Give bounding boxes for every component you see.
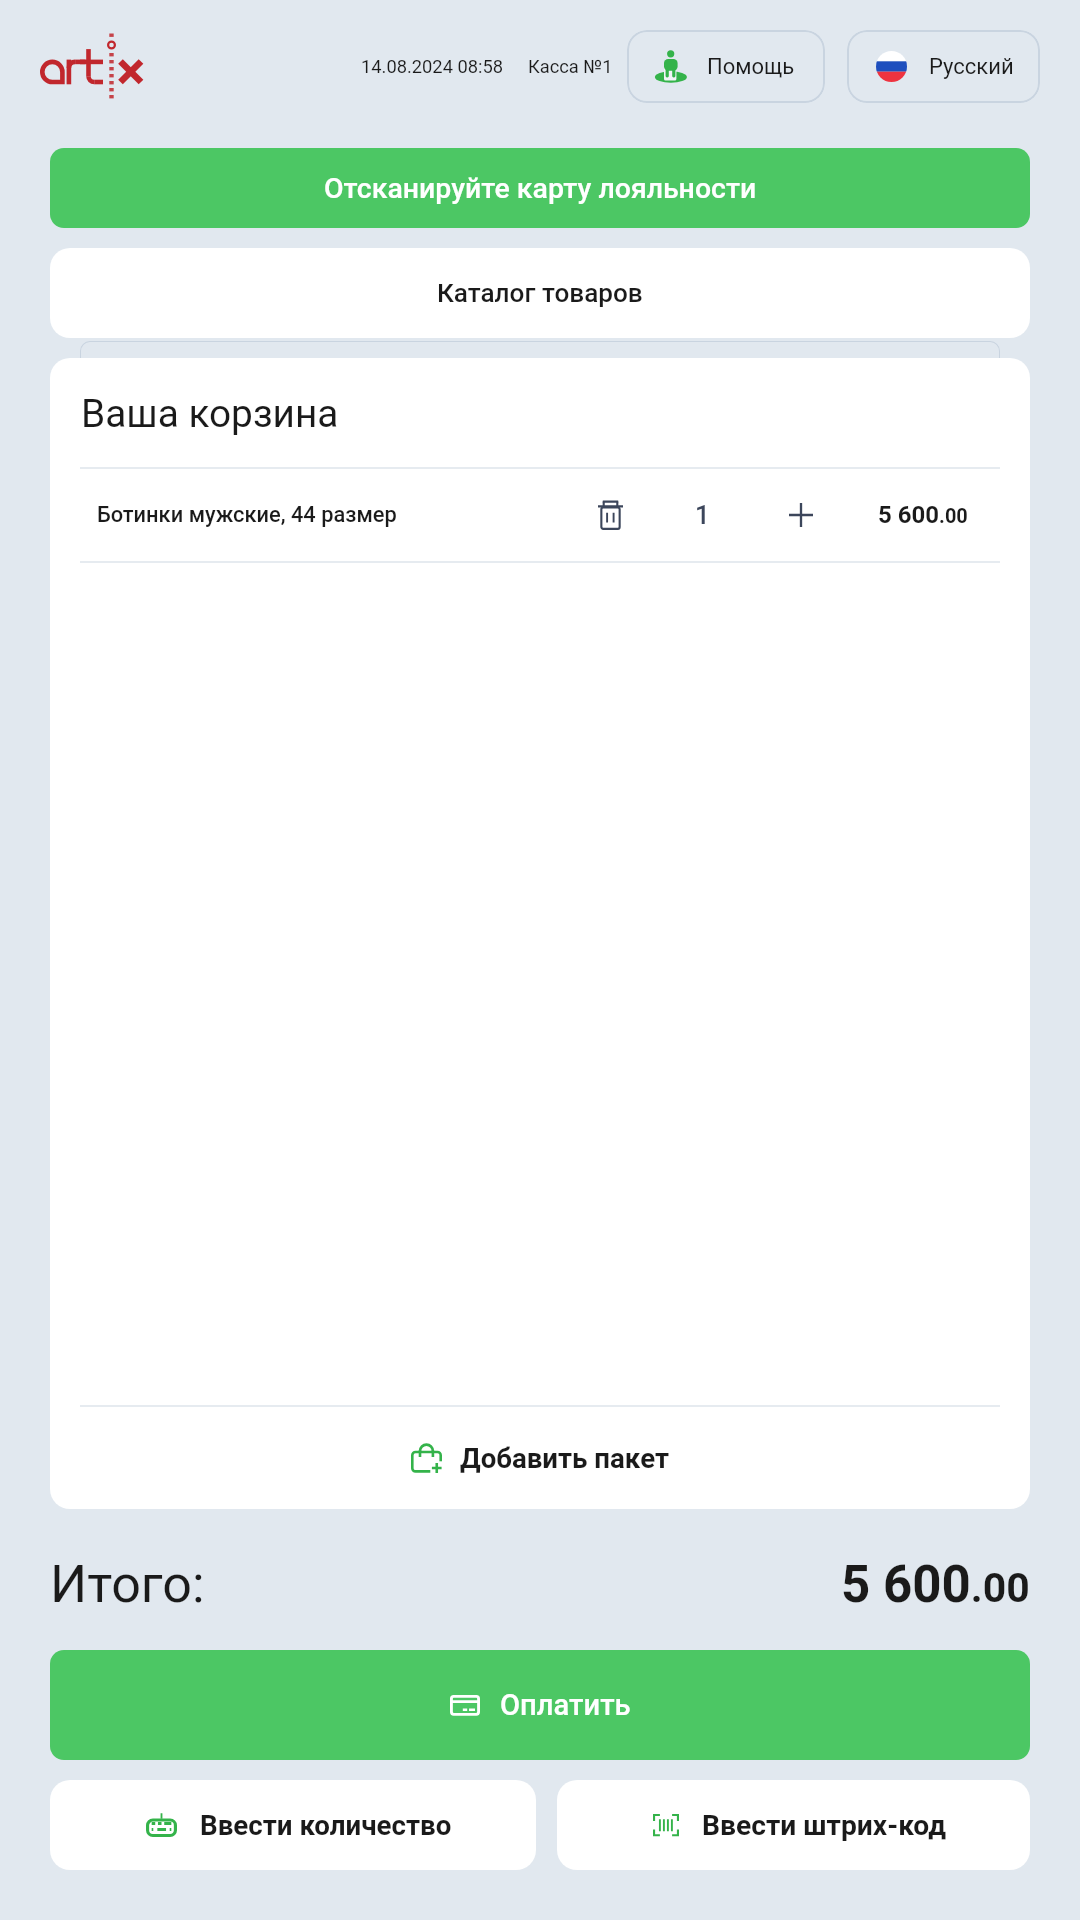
button[interactable]: Удалить товар — [568, 472, 653, 557]
staticText: Отсканируйте карту лояльности — [324, 172, 757, 205]
staticText: Добавить пакет — [460, 1442, 669, 1474]
staticText: Итого: — [50, 1554, 205, 1615]
staticText: Оплатить — [500, 1688, 631, 1722]
button[interactable]: Отсканируйте карту лояльности — [50, 148, 1030, 228]
staticText: 1 — [695, 500, 710, 530]
other: Artix Solutions — [38, 27, 160, 107]
staticText: 5 600.00 — [841, 1555, 1030, 1615]
button[interactable]: Ввести штрих-код — [557, 1780, 1030, 1870]
button[interactable]: Оплатить — [50, 1650, 1030, 1760]
staticText: Ввести количество — [200, 1809, 452, 1841]
staticText: Ввести штрих-код — [702, 1809, 946, 1842]
staticText: Русский — [929, 54, 1014, 80]
button[interactable]: Ботинки мужские, 44 размер — [50, 468, 1030, 561]
staticText: Касса №1 — [528, 56, 613, 77]
staticText: Ботинки мужские, 44 размер — [97, 502, 397, 528]
button[interactable]: Русский — [847, 30, 1040, 103]
button[interactable]: Помощь — [627, 30, 825, 103]
button[interactable]: Добавить товар — [758, 472, 843, 557]
staticText: Каталог товаров — [437, 278, 643, 309]
button[interactable]: Ввести количество — [50, 1780, 536, 1870]
staticText: Помощь — [707, 54, 795, 80]
button[interactable]: Добавить пакет — [50, 1406, 1030, 1509]
button[interactable]: Каталог товаров — [50, 248, 1030, 338]
staticText: 5 600.00 — [878, 501, 968, 529]
staticText: 14.08.2024 08:58 — [361, 56, 504, 77]
other: Добавить — [789, 503, 813, 527]
staticText: Ваша корзина — [81, 391, 339, 436]
